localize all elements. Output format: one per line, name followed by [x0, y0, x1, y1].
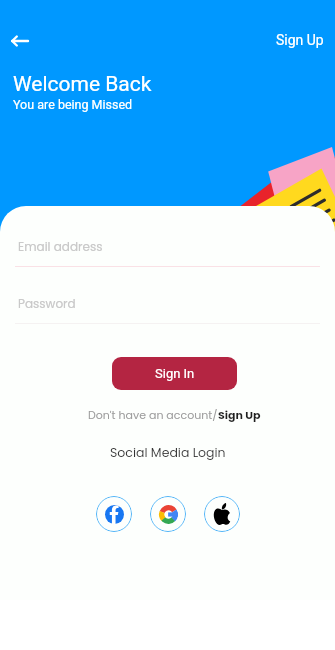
button[interactable]: Sign in with Facebook [96, 496, 132, 532]
button[interactable]: Sign in with Apple [204, 496, 240, 532]
button[interactable]: Sign Up [265, 26, 335, 54]
button[interactable]: Back [0, 22, 38, 60]
staticText: Social Media Login [110, 444, 226, 461]
button[interactable]: Sign In [112, 357, 237, 390]
staticText: Sign Up [276, 32, 324, 48]
staticText: Password [18, 295, 76, 312]
staticText: Sign Up [218, 407, 261, 422]
staticText: Don't have an account/ [88, 407, 218, 422]
staticText: Email address [18, 238, 103, 255]
button[interactable]: Sign Up [218, 407, 261, 422]
staticText: Welcome Back [13, 72, 152, 97]
staticText: You are being Missed [13, 97, 133, 112]
staticText: Sign In [155, 366, 195, 381]
button[interactable]: Sign in with Google [150, 496, 186, 532]
